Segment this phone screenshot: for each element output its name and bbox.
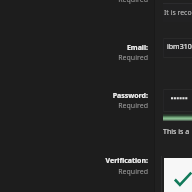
staticText: Email:	[68, 43, 148, 53]
staticText: This is a	[163, 127, 190, 137]
button[interactable]: Required	[68, 167, 148, 177]
button[interactable]: Required	[68, 101, 148, 111]
button[interactable]: Required	[68, 53, 148, 63]
button[interactable]: Verified	[164, 158, 192, 192]
staticText: Required	[68, 0, 148, 5]
staticText: Verification:	[68, 156, 148, 166]
staticText: Required	[68, 53, 148, 63]
button[interactable]	[163, 38, 192, 58]
staticText: Password:	[68, 91, 148, 101]
button[interactable]: Email:	[68, 43, 148, 53]
staticText: Required	[68, 167, 148, 177]
button[interactable]: Password:	[68, 91, 148, 101]
button[interactable]: Verification:	[68, 156, 148, 166]
staticText: ibm310	[167, 42, 192, 52]
button[interactable]	[163, 89, 192, 112]
staticText: It is reco	[164, 8, 192, 17]
button[interactable]: Password strength	[163, 114, 192, 121]
button[interactable]: Required	[68, 0, 148, 5]
staticText: Required	[68, 101, 148, 111]
